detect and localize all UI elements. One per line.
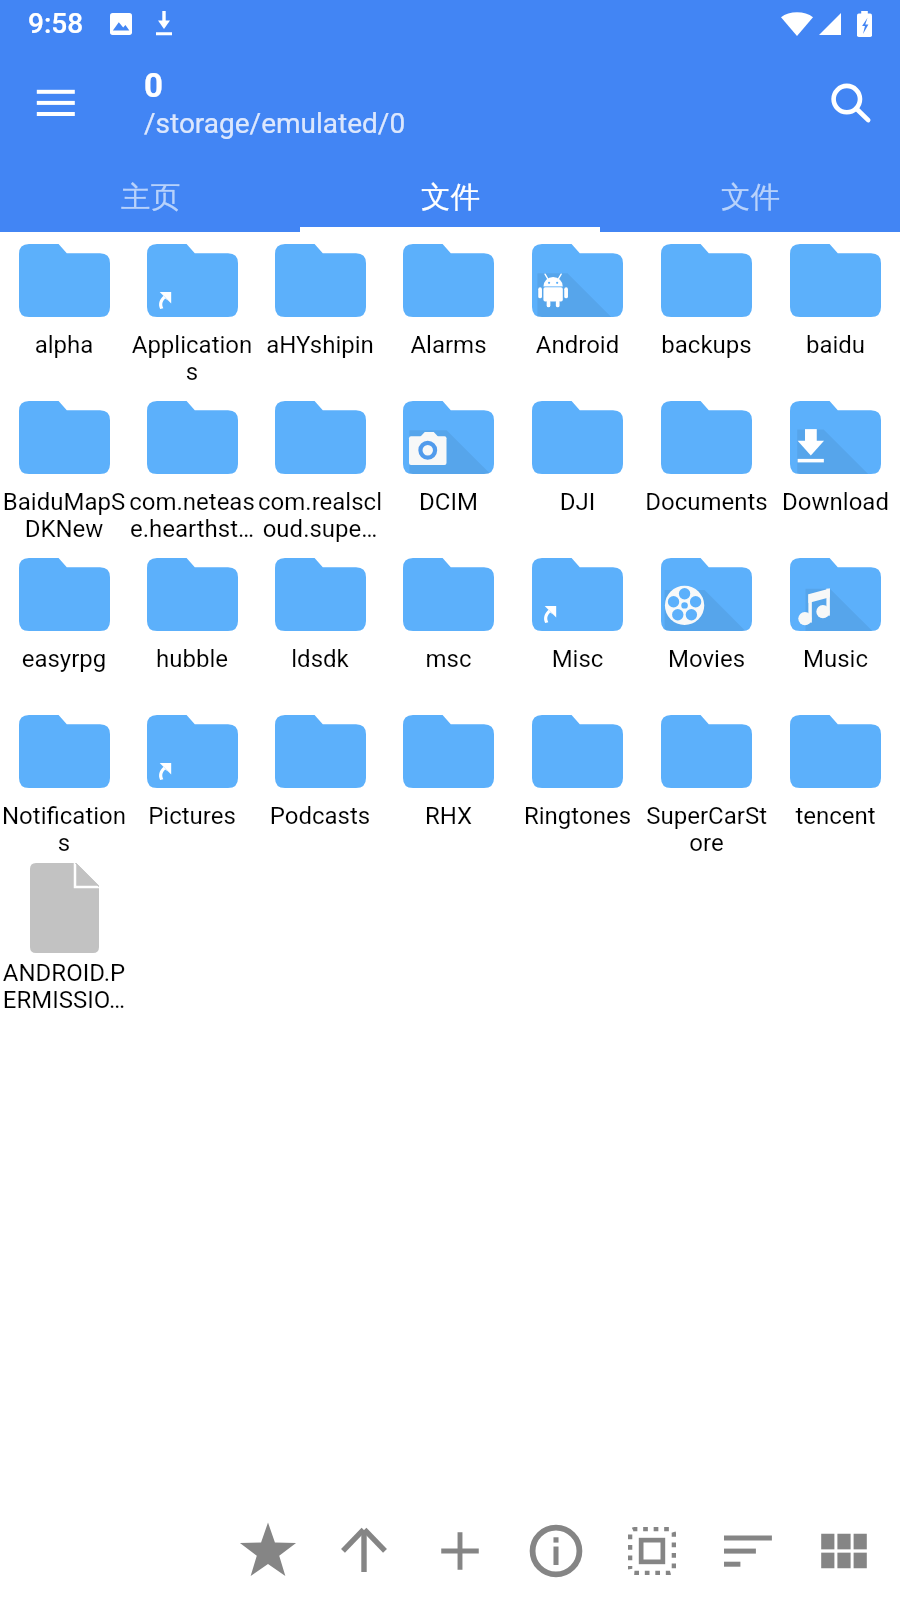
button[interactable]: baidu	[771, 235, 900, 392]
staticText: Documents	[642, 488, 771, 516]
staticText: SuperCarStore	[642, 802, 771, 857]
staticText: DCIM	[384, 488, 513, 516]
staticText: Music	[771, 645, 900, 673]
staticText: hubble	[128, 645, 256, 673]
button[interactable]: Info	[512, 1507, 600, 1595]
staticText: ldsdk	[256, 645, 384, 673]
button[interactable]: Ringtones	[513, 706, 642, 863]
button[interactable]: alpha	[0, 235, 128, 392]
staticText: msc	[384, 645, 513, 673]
button[interactable]: RHX	[384, 706, 513, 863]
button[interactable]: Pictures	[128, 706, 256, 863]
staticText: Podcasts	[256, 802, 384, 830]
staticText: aHYshipin	[256, 331, 384, 359]
staticText: 文件	[421, 179, 480, 216]
button[interactable]: Select all	[608, 1507, 696, 1595]
button[interactable]: Menu	[18, 56, 94, 132]
button[interactable]: Grid view	[800, 1507, 888, 1595]
staticText: BaiduMapSDKNew	[0, 488, 128, 543]
staticText: DJI	[513, 488, 642, 516]
button[interactable]: Podcasts	[256, 706, 384, 863]
button[interactable]: Applications	[128, 235, 256, 392]
button[interactable]: BaiduMapSDKNew	[0, 392, 128, 549]
staticText: baidu	[771, 331, 900, 359]
button[interactable]: msc	[384, 549, 513, 706]
button[interactable]: Music	[771, 549, 900, 706]
button[interactable]: Search	[812, 61, 888, 137]
staticText: com.netease.hearthst…	[128, 488, 256, 543]
button[interactable]: Notifications	[0, 706, 128, 863]
button[interactable]: Android	[513, 235, 642, 392]
staticText: Pictures	[128, 802, 256, 830]
button[interactable]: ldsdk	[256, 549, 384, 706]
staticText: /storage/emulated/0	[144, 107, 406, 140]
button[interactable]: Add	[416, 1507, 504, 1595]
staticText: Ringtones	[513, 802, 642, 830]
button[interactable]: Move up	[320, 1507, 408, 1595]
staticText: 主页	[121, 179, 180, 216]
button[interactable]: tencent	[771, 706, 900, 863]
button[interactable]: Favorite	[224, 1507, 312, 1595]
button[interactable]: DJI	[513, 392, 642, 549]
staticText: ANDROID.PERMISSIO…	[0, 959, 128, 1014]
button[interactable]: com.netease.hearthst…	[128, 392, 256, 549]
staticText: Movies	[642, 645, 771, 673]
staticText: RHX	[384, 802, 513, 830]
staticText: tencent	[771, 802, 900, 830]
button[interactable]: ANDROID.PERMISSIO…	[0, 863, 128, 1020]
button[interactable]: Alarms	[384, 235, 513, 392]
button[interactable]: Sort	[704, 1507, 792, 1595]
button[interactable]: DCIM	[384, 392, 513, 549]
staticText: easyrpg	[0, 645, 128, 673]
staticText: Alarms	[384, 331, 513, 359]
button[interactable]: Misc	[513, 549, 642, 706]
button[interactable]: aHYshipin	[256, 235, 384, 392]
staticText: alpha	[0, 331, 128, 359]
button[interactable]: com.realscloud.supe…	[256, 392, 384, 549]
button[interactable]: easyrpg	[0, 549, 128, 706]
button[interactable]: hubble	[128, 549, 256, 706]
button[interactable]: backups	[642, 235, 771, 392]
button[interactable]: 主页	[0, 158, 300, 232]
staticText: Download	[771, 488, 900, 516]
staticText: Applications	[128, 331, 256, 386]
staticText: backups	[642, 331, 771, 359]
button[interactable]: Documents	[642, 392, 771, 549]
staticText: 9:58	[28, 7, 84, 40]
staticText: com.realscloud.supe…	[256, 488, 384, 543]
button[interactable]: Download	[771, 392, 900, 549]
button[interactable]: SuperCarStore	[642, 706, 771, 863]
staticText: Android	[513, 331, 642, 359]
button[interactable]: 文件	[600, 158, 900, 232]
button[interactable]: Movies	[642, 549, 771, 706]
staticText: Notifications	[0, 802, 128, 857]
button[interactable]: 文件	[300, 158, 600, 232]
staticText: Misc	[513, 645, 642, 673]
staticText: 0	[144, 66, 163, 105]
staticText: 文件	[721, 179, 780, 216]
